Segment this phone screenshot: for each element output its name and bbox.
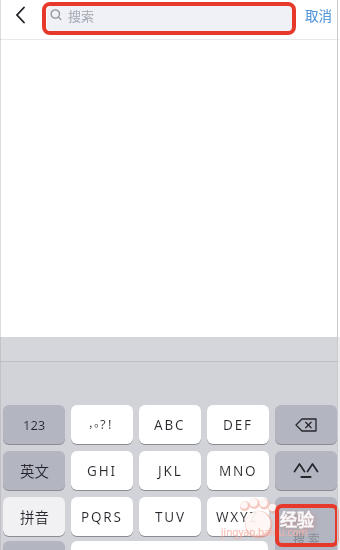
staticText: 英文 <box>20 460 49 481</box>
staticText: MNO <box>219 462 258 480</box>
button[interactable]: MNO <box>207 451 269 490</box>
staticText: jingyan.baidu.com <box>221 525 308 539</box>
staticText: 。 <box>94 413 107 430</box>
button[interactable]: , <box>71 405 133 444</box>
staticText: 搜 索 <box>293 530 320 547</box>
staticText: DEF <box>223 416 253 434</box>
button[interactable]: GHI <box>71 451 133 490</box>
staticText: 123 <box>23 416 46 434</box>
button[interactable]: 拼音 <box>3 497 65 536</box>
button[interactable]: PQRS <box>71 497 133 536</box>
button[interactable] <box>71 541 268 550</box>
staticText: 搜索 <box>68 6 95 25</box>
staticText: , <box>89 413 93 430</box>
staticText: PQRS <box>81 508 123 526</box>
staticText: GHI <box>87 462 117 480</box>
staticText: ABC <box>154 416 186 434</box>
button[interactable]: TUV <box>139 497 201 536</box>
staticText: 取消 <box>305 5 332 25</box>
button[interactable]: 123 <box>3 405 65 444</box>
button[interactable] <box>275 451 337 490</box>
staticText: JKL <box>158 462 183 480</box>
staticText: TUV <box>155 508 186 526</box>
button[interactable] <box>3 541 65 550</box>
button[interactable]: 取消 <box>298 0 338 30</box>
button[interactable]: DEF <box>207 405 269 444</box>
button[interactable]: WXYZ <box>207 497 269 536</box>
button[interactable]: 搜索 <box>47 6 293 31</box>
staticText: 拼音 <box>20 506 49 527</box>
staticText: 经验 <box>280 506 314 531</box>
staticText: ! <box>108 415 112 433</box>
staticText: WXYZ <box>216 508 260 526</box>
button[interactable]: 英文 <box>3 451 65 490</box>
button[interactable]: 搜 索 <box>275 497 337 550</box>
button[interactable]: JKL <box>139 451 201 490</box>
staticText: ? <box>100 415 106 433</box>
button[interactable] <box>6 2 34 30</box>
button[interactable] <box>275 405 337 444</box>
button[interactable]: ABC <box>139 405 201 444</box>
